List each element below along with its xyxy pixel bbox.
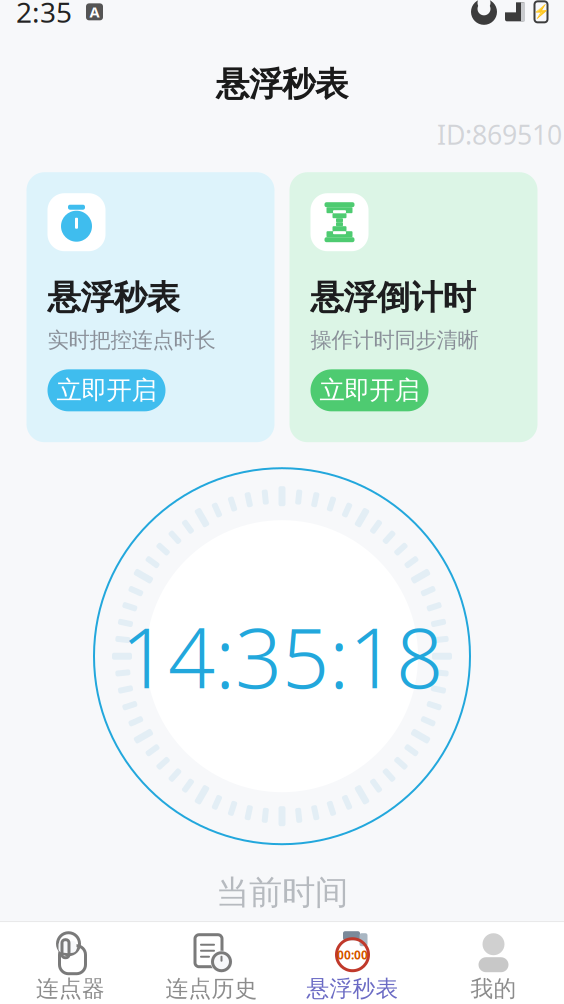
- staticText: ID:869510: [437, 117, 562, 152]
- button[interactable]: 00:00: [282, 926, 423, 1004]
- staticText: A: [89, 2, 99, 22]
- button[interactable]: 我的: [423, 926, 564, 1004]
- staticText: 14:35:18: [121, 601, 443, 711]
- staticText: 悬浮秒表: [47, 277, 179, 318]
- staticText: 当前时间: [216, 872, 348, 913]
- staticText: 悬浮秒表: [216, 64, 348, 105]
- staticText: 2:35: [16, 0, 72, 31]
- button[interactable]: 悬浮秒表: [26, 172, 274, 442]
- staticText: 实时把控连点时长: [47, 327, 215, 353]
- staticText: 悬浮秒表: [306, 975, 398, 1002]
- staticText: 00:00: [337, 947, 368, 963]
- staticText: 连点历史: [165, 975, 257, 1002]
- button[interactable]: 连点器: [0, 926, 141, 1004]
- staticText: 连点器: [36, 975, 105, 1002]
- staticText: 我的: [470, 975, 516, 1002]
- staticText: 悬浮倒计时: [310, 277, 475, 318]
- staticText: 立即开启: [56, 375, 156, 406]
- staticText: 操作计时同步清晰: [310, 327, 478, 353]
- staticText: ⚡: [532, 4, 549, 19]
- button[interactable]: 悬浮倒计时: [289, 172, 537, 442]
- staticText: 立即开启: [319, 375, 419, 406]
- button[interactable]: 连点历史: [141, 926, 282, 1004]
